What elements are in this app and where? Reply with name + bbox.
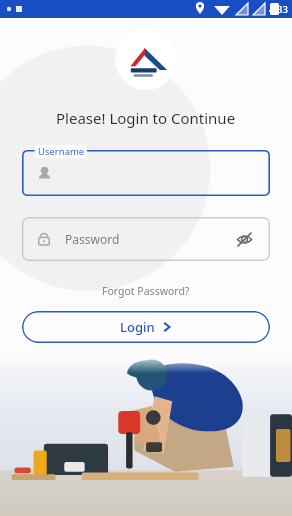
staticText: 4:33	[269, 3, 288, 16]
button[interactable]	[22, 150, 270, 196]
button[interactable]: Forgot Password?	[96, 281, 196, 301]
staticText: Password	[65, 231, 120, 247]
button[interactable]: Show password	[232, 227, 256, 251]
staticText: Username	[38, 145, 85, 158]
button[interactable]: Password	[22, 217, 270, 261]
staticText: Please! Login to Continue	[56, 108, 236, 128]
staticText: Login	[120, 318, 155, 336]
staticText: Forgot Password?	[102, 284, 190, 298]
button[interactable]: Login	[22, 311, 270, 343]
